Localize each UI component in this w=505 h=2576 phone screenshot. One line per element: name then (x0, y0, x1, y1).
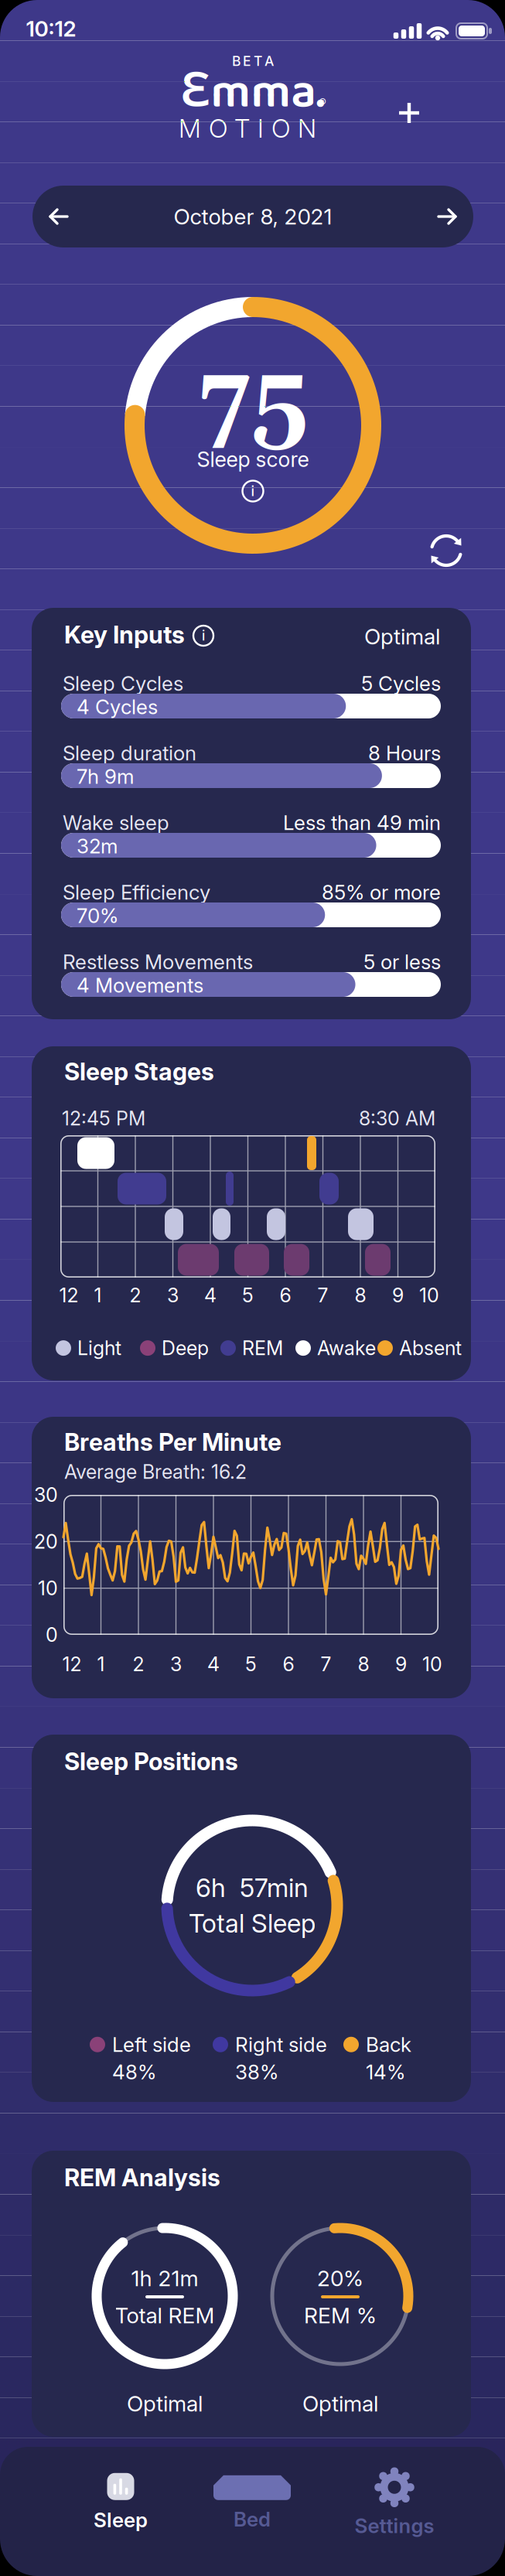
staticText: Right side (235, 2032, 327, 2057)
button[interactable]: Key inputs info (192, 624, 215, 647)
staticText: Key Inputs (64, 620, 185, 649)
staticText: October 8, 2021 (174, 203, 332, 230)
staticText: 6h 57min (196, 1872, 309, 1903)
staticText: Ɛmma. (181, 54, 325, 131)
staticText: 85% or more (322, 880, 441, 904)
staticText: 7 (317, 1284, 328, 1307)
staticText: Total REM (115, 2302, 215, 2329)
staticText: 4 Movements (77, 973, 203, 997)
staticText: 3 (167, 1284, 179, 1307)
staticText: 8 Hours (368, 741, 441, 765)
staticText: 5 (245, 1653, 257, 1676)
staticText: Wake sleep (63, 810, 169, 835)
staticText: ® (319, 96, 326, 109)
button[interactable]: Bed (183, 2460, 322, 2545)
staticText: 6 (283, 1653, 294, 1676)
staticText: 9 (395, 1653, 407, 1676)
staticText: Less than 49 min (283, 810, 441, 835)
staticText: 20 (34, 1530, 58, 1553)
staticText: Back (366, 2032, 411, 2057)
staticText: Average Breath: 16.2 (64, 1460, 247, 1483)
staticText: Bed (234, 2507, 271, 2531)
staticText: Restless Movements (63, 950, 253, 974)
staticText: 0 (46, 1623, 58, 1647)
staticText: 4 (204, 1284, 217, 1307)
staticText: 5 Cycles (361, 671, 441, 696)
staticText: 6 (280, 1284, 291, 1307)
button[interactable]: Previous day (42, 200, 76, 234)
staticText: 1 (97, 1653, 105, 1676)
staticText: 1 (94, 1284, 102, 1307)
staticText: 4 Cycles (77, 695, 158, 719)
staticText: Sleep Stages (64, 1057, 214, 1086)
staticText: i (202, 628, 205, 644)
staticText: 8 (355, 1284, 366, 1307)
staticText: Deep (162, 1336, 209, 1360)
staticText: 20% (317, 2265, 363, 2291)
staticText: i (251, 483, 255, 500)
staticText: Sleep duration (63, 741, 196, 765)
staticText: REM Analysis (64, 2163, 220, 2192)
staticText: 14% (366, 2060, 405, 2084)
staticText: 7h 9m (77, 764, 134, 789)
staticText: 1h 21m (131, 2265, 198, 2291)
staticText: MOTION (179, 113, 316, 144)
staticText: 12 (62, 1653, 82, 1676)
button[interactable]: Refresh (429, 534, 463, 568)
staticText: 5 (242, 1284, 254, 1307)
staticText: Light (77, 1336, 121, 1360)
button[interactable]: Sleep score info (241, 479, 264, 503)
staticText: REM (242, 1336, 283, 1360)
staticText: Optimal (302, 2390, 378, 2417)
staticText: 30 (34, 1483, 58, 1507)
button[interactable]: Next day (430, 200, 464, 234)
staticText: Absent (399, 1336, 462, 1360)
staticText: Awake (317, 1336, 376, 1360)
staticText: 7 (321, 1653, 331, 1676)
button[interactable]: Add (393, 97, 425, 129)
staticText: 10 (419, 1284, 439, 1307)
staticText: 12 (59, 1284, 78, 1307)
staticText: 4 (207, 1653, 220, 1676)
staticText: 3 (170, 1653, 182, 1676)
staticText: 32m (77, 834, 118, 858)
staticText: 12:45 PM (62, 1107, 145, 1130)
staticText: REM % (304, 2302, 377, 2329)
staticText: B E T A (232, 53, 274, 69)
staticText: Sleep Cycles (63, 671, 183, 696)
staticText: Settings (355, 2514, 434, 2538)
staticText: 8 (358, 1653, 369, 1676)
staticText: 5 or less (363, 950, 441, 974)
staticText: Sleep Positions (64, 1747, 238, 1776)
staticText: Sleep (94, 2508, 148, 2532)
staticText: 2 (130, 1284, 141, 1307)
staticText: 10:12 (26, 16, 76, 42)
staticText: Left side (112, 2032, 191, 2057)
staticText: 48% (112, 2060, 156, 2084)
staticText: 10 (38, 1576, 58, 1600)
staticText: Breaths Per Minute (64, 1428, 282, 1457)
staticText: Sleep score (197, 447, 309, 472)
staticText: 38% (235, 2060, 278, 2084)
staticText: 8:30 AM (359, 1107, 435, 1130)
staticText: 75 (198, 343, 308, 465)
staticText: Total Sleep (189, 1908, 316, 1939)
button[interactable]: Sleep (51, 2460, 190, 2545)
staticText: 2 (133, 1653, 144, 1676)
staticText: Optimal (364, 623, 440, 650)
staticText: 9 (392, 1284, 404, 1307)
staticText: Sleep Efficiency (63, 880, 210, 904)
staticText: 10 (422, 1653, 442, 1676)
button[interactable]: Settings (325, 2460, 464, 2545)
staticText: Optimal (127, 2390, 203, 2417)
staticText: 70% (77, 903, 118, 928)
